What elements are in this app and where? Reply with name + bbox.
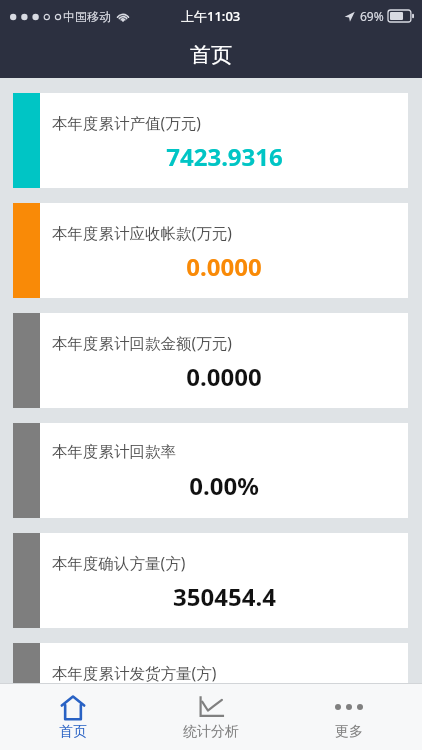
button[interactable]: 本年度累计产值(万元) <box>13 93 408 188</box>
staticText: 0.0000 <box>186 250 262 283</box>
staticText: 7423.9316 <box>166 140 283 173</box>
staticText: 69% <box>360 8 384 24</box>
button[interactable]: 本年度确认方量(方) <box>13 533 408 628</box>
staticText: 本年度确认方量(方) <box>52 552 186 573</box>
staticText: 0.00% <box>189 469 259 502</box>
staticText: 上午11:03 <box>181 7 241 25</box>
button[interactable]: 本年度累计回款金额(万元) <box>13 313 408 408</box>
staticText: 0.0000 <box>186 360 262 393</box>
button[interactable]: 首页 <box>8 683 138 750</box>
staticText: 本年度累计应收帐款(万元) <box>52 222 232 243</box>
button[interactable]: 本年度累计应收帐款(万元) <box>13 203 408 298</box>
staticText: 本年度累计回款率 <box>52 442 176 462</box>
button[interactable]: 本年度累计发货方量(方) <box>13 643 408 683</box>
staticText: 更多 <box>335 723 363 741</box>
staticText: 本年度累计产值(万元) <box>52 112 201 133</box>
staticText: 中国移动 <box>63 9 111 24</box>
button[interactable]: 本年度累计回款率 <box>13 423 408 518</box>
staticText: 350454.4 <box>173 580 276 613</box>
staticText: 首页 <box>59 723 87 741</box>
staticText: 首页 <box>190 42 232 68</box>
button[interactable]: 统计分析 <box>146 683 276 750</box>
button[interactable]: 更多 <box>284 683 414 750</box>
staticText: 本年度累计回款金额(万元) <box>52 332 232 353</box>
staticText: 统计分析 <box>183 723 239 741</box>
staticText: 本年度累计发货方量(方) <box>52 662 217 683</box>
